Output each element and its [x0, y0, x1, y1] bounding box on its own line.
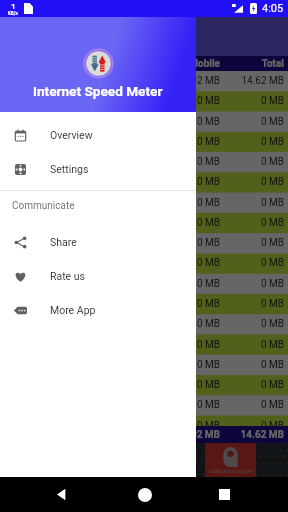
- staticText: 0 MB: [154, 116, 220, 128]
- staticText: 0 MB: [220, 217, 284, 229]
- staticText: 0 MB: [154, 399, 220, 411]
- staticText: Internet Speed Meter: [33, 83, 163, 99]
- staticText: AdMob by Google: [209, 468, 253, 474]
- staticText: More App: [50, 304, 96, 316]
- staticText: 1: [11, 2, 16, 11]
- staticText: 0 MB: [220, 298, 284, 310]
- staticText: 0 MB: [154, 197, 220, 209]
- staticText: Date: [4, 58, 88, 70]
- staticText: WiFi: [88, 58, 154, 70]
- staticText: 18 Jun: [4, 156, 88, 168]
- staticText: 0.02 MB: [154, 75, 220, 87]
- staticText: 4:05: [262, 2, 284, 15]
- button[interactable]: Settings: [0, 152, 196, 186]
- staticText: 0 MB: [88, 136, 154, 148]
- staticText: Settings: [50, 163, 89, 175]
- staticText: Share: [50, 236, 77, 248]
- staticText: 14.62 MB: [220, 75, 284, 87]
- staticText: 0.02 MB: [154, 429, 220, 441]
- staticText: 0 MB: [220, 116, 284, 128]
- staticText: KB/s: [8, 11, 18, 16]
- staticText: 0 MB: [220, 278, 284, 290]
- staticText: 0 MB: [220, 136, 284, 148]
- staticText: 12 Jun: [4, 278, 88, 290]
- staticText: 16 Jun: [4, 197, 88, 209]
- staticText: 0 MB: [220, 257, 284, 269]
- staticText: 0 MB: [220, 420, 284, 426]
- staticText: Communicate: [12, 200, 75, 212]
- staticText: 14 Jun: [4, 237, 88, 249]
- staticText: 0 MB: [154, 420, 220, 426]
- staticText: 0 MB: [154, 156, 220, 168]
- staticText: 0 MB: [154, 95, 220, 107]
- staticText: 0 MB: [154, 136, 220, 148]
- staticText: 0 MB: [154, 339, 220, 351]
- button[interactable]: Back: [55, 488, 68, 501]
- staticText: 14.62 MB: [220, 429, 284, 441]
- button[interactable]: Overview: [0, 118, 196, 152]
- button[interactable]: More App: [0, 293, 196, 327]
- staticText: Rate us: [50, 270, 85, 282]
- button[interactable]: Rate us: [0, 259, 196, 293]
- staticText: 0 MB: [88, 95, 154, 107]
- staticText: 0 MB: [220, 379, 284, 391]
- staticText: Mobile: [154, 58, 220, 70]
- staticText: 0 MB: [220, 237, 284, 249]
- staticText: 0 MB: [154, 359, 220, 371]
- staticText: 0 MB: [220, 339, 284, 351]
- staticText: 21 Jun: [4, 95, 88, 107]
- staticText: 11 Jun: [4, 298, 88, 310]
- staticText: 0 MB: [154, 318, 220, 330]
- button[interactable]: Home: [138, 488, 152, 502]
- staticText: 0 MB: [220, 156, 284, 168]
- staticText: Overview: [50, 129, 93, 141]
- staticText: 0 MB: [154, 237, 220, 249]
- staticText: 0 MB: [88, 298, 154, 310]
- staticText: Total: [220, 58, 284, 70]
- staticText: 0 MB: [154, 298, 220, 310]
- staticText: 0 MB: [154, 176, 220, 188]
- staticText: 0 MB: [220, 176, 284, 188]
- staticText: 14.60 MB: [88, 75, 154, 87]
- staticText: 0 MB: [220, 318, 284, 330]
- staticText: 0 MB: [154, 257, 220, 269]
- staticText: 19 Jun: [4, 136, 88, 148]
- staticText: 0 MB: [220, 197, 284, 209]
- staticText: 0 MB: [154, 278, 220, 290]
- staticText: 0 MB: [220, 359, 284, 371]
- staticText: 0 MB: [220, 95, 284, 107]
- staticText: 0 MB: [154, 379, 220, 391]
- staticText: 0 MB: [154, 217, 220, 229]
- staticText: 0 MB: [220, 399, 284, 411]
- button[interactable]: Share: [0, 225, 196, 259]
